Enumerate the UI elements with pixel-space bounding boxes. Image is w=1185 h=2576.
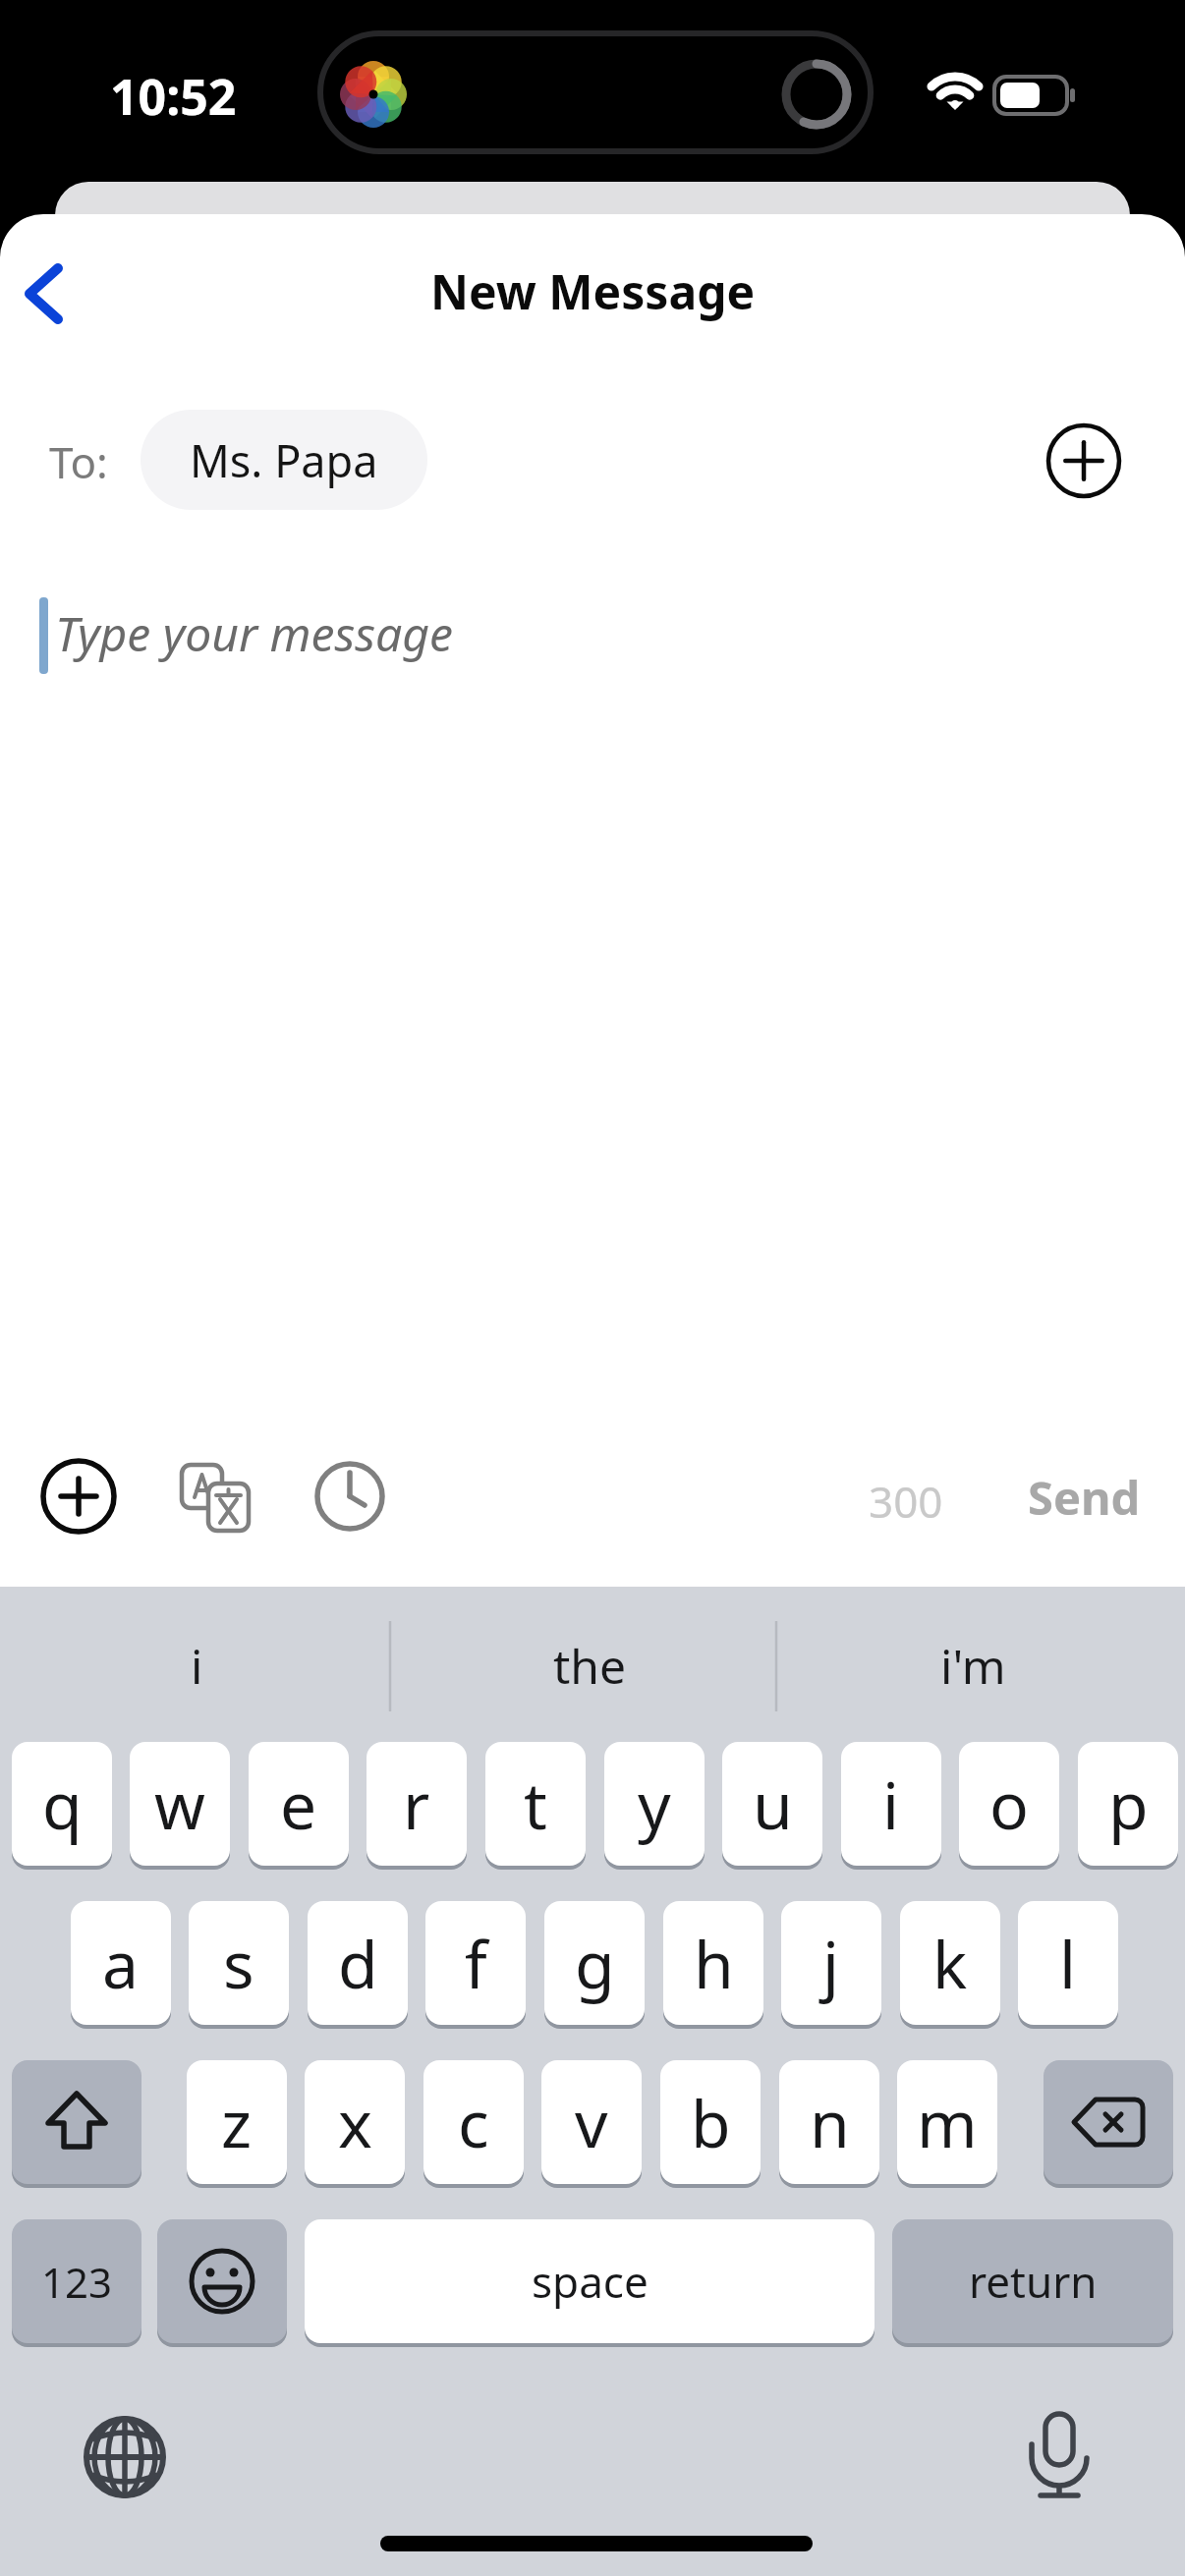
- staticText: 10:52: [110, 63, 237, 130]
- button[interactable]: t: [485, 1742, 586, 1866]
- button[interactable]: g: [544, 1901, 645, 2025]
- button[interactable]: [84, 2416, 166, 2498]
- staticText: New Message: [430, 259, 756, 323]
- staticText: Ms. Papa: [190, 430, 378, 490]
- button[interactable]: [1020, 2407, 1099, 2501]
- button[interactable]: f: [425, 1901, 526, 2025]
- button[interactable]: u: [722, 1742, 822, 1866]
- staticText: w: [154, 1760, 205, 1848]
- button[interactable]: l: [1018, 1901, 1118, 2025]
- staticText: i: [882, 1760, 900, 1848]
- staticText: m: [917, 2078, 978, 2166]
- button[interactable]: [10, 251, 88, 339]
- staticText: To:: [49, 432, 108, 491]
- staticText: return: [969, 2252, 1098, 2311]
- button[interactable]: d: [308, 1901, 408, 2025]
- button[interactable]: a: [71, 1901, 171, 2025]
- button[interactable]: [175, 1458, 255, 1539]
- staticText: z: [221, 2078, 253, 2166]
- staticText: l: [1059, 1919, 1077, 2007]
- button[interactable]: s: [189, 1901, 289, 2025]
- staticText: k: [932, 1919, 968, 2007]
- button[interactable]: k: [900, 1901, 1000, 2025]
- button[interactable]: [12, 2060, 141, 2184]
- staticText: n: [810, 2078, 850, 2166]
- button[interactable]: Send: [1028, 1466, 1146, 1535]
- staticText: j: [822, 1919, 840, 2007]
- staticText: e: [280, 1760, 317, 1848]
- staticText: v: [575, 2078, 608, 2166]
- button[interactable]: o: [959, 1742, 1059, 1866]
- button[interactable]: the: [432, 1616, 747, 1714]
- staticText: h: [694, 1919, 734, 2007]
- button[interactable]: [1044, 2060, 1173, 2184]
- button[interactable]: i: [841, 1742, 941, 1866]
- staticText: q: [42, 1760, 83, 1848]
- staticText: t: [524, 1760, 547, 1848]
- staticText: p: [1108, 1760, 1149, 1848]
- staticText: o: [989, 1760, 1029, 1848]
- button[interactable]: h: [663, 1901, 763, 2025]
- button[interactable]: y: [604, 1742, 705, 1866]
- staticText: f: [465, 1919, 487, 2007]
- button[interactable]: [1043, 420, 1125, 502]
- button[interactable]: j: [781, 1901, 881, 2025]
- button[interactable]: Ms. Papa: [141, 410, 427, 510]
- staticText: g: [575, 1919, 615, 2007]
- staticText: 300: [869, 1472, 943, 1531]
- button[interactable]: z: [187, 2060, 287, 2184]
- button[interactable]: x: [305, 2060, 405, 2184]
- button[interactable]: n: [779, 2060, 879, 2184]
- staticText: i'm: [940, 1634, 1006, 1698]
- staticText: b: [691, 2078, 731, 2166]
- button[interactable]: [312, 1459, 387, 1534]
- staticText: a: [102, 1919, 140, 2007]
- button[interactable]: 123: [12, 2219, 141, 2343]
- staticText: x: [338, 2078, 372, 2166]
- staticText: Type your message: [55, 601, 453, 665]
- button[interactable]: r: [367, 1742, 467, 1866]
- button[interactable]: m: [897, 2060, 997, 2184]
- staticText: s: [223, 1919, 254, 2007]
- button[interactable]: w: [130, 1742, 230, 1866]
- button[interactable]: space: [305, 2219, 875, 2343]
- button[interactable]: q: [12, 1742, 112, 1866]
- staticText: the: [553, 1634, 627, 1698]
- staticText: y: [638, 1760, 671, 1848]
- button[interactable]: v: [541, 2060, 642, 2184]
- staticText: 123: [41, 2254, 113, 2310]
- button[interactable]: b: [660, 2060, 761, 2184]
- staticText: Send: [1028, 1466, 1141, 1529]
- button[interactable]: e: [249, 1742, 349, 1866]
- button[interactable]: c: [423, 2060, 524, 2184]
- button[interactable]: [157, 2219, 287, 2343]
- staticText: d: [338, 1919, 378, 2007]
- staticText: space: [532, 2252, 649, 2311]
- button[interactable]: return: [892, 2219, 1173, 2343]
- button[interactable]: [37, 1455, 120, 1538]
- staticText: i: [191, 1634, 203, 1698]
- button[interactable]: i'm: [816, 1616, 1130, 1714]
- button[interactable]: i: [39, 1616, 354, 1714]
- staticText: u: [753, 1760, 793, 1848]
- staticText: r: [403, 1760, 430, 1848]
- staticText: c: [458, 2078, 489, 2166]
- button[interactable]: p: [1078, 1742, 1178, 1866]
